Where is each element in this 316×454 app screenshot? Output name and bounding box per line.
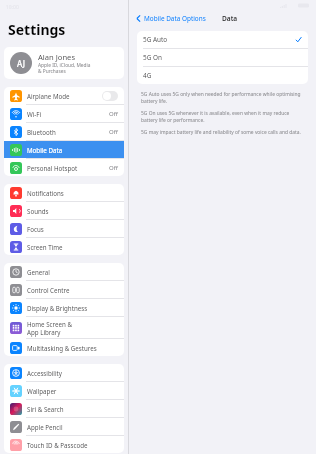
staticText: 5G On uses 5G whenever it is available, … <box>141 110 304 123</box>
button[interactable]: Wi-Fi <box>4 105 124 122</box>
staticText: Apple Pencil <box>27 423 63 431</box>
button[interactable]: 4G <box>137 67 308 84</box>
button[interactable]: Mobile Data <box>4 141 124 158</box>
staticText: 5G Auto uses 5G only when needed for per… <box>141 91 304 104</box>
button[interactable]: Mobile Data Options <box>133 12 208 25</box>
staticText: Home Screen & <box>27 320 72 328</box>
button[interactable]: Accessibility <box>4 364 124 381</box>
staticText: Alan Jones <box>38 52 76 62</box>
button[interactable]: Siri & Search <box>4 400 124 417</box>
staticText: Off <box>109 164 118 172</box>
staticText: 5G may impact battery life and reliabili… <box>141 129 301 136</box>
staticText: 10:00 <box>6 4 19 11</box>
button[interactable]: Home Screen & <box>4 317 124 338</box>
staticText: Display & Brightness <box>27 304 88 312</box>
button[interactable]: Multitasking & Gestures <box>4 339 124 356</box>
staticText: Multitasking & Gestures <box>27 344 97 352</box>
button[interactable]: Sounds <box>4 202 124 219</box>
staticText: Mobile Data Options <box>144 14 206 23</box>
staticText: Wallpaper <box>27 387 57 395</box>
staticText: 5G On <box>143 53 302 62</box>
button[interactable]: Touch ID & Passcode <box>4 436 124 453</box>
other: Selected <box>295 36 302 43</box>
staticText: Data <box>222 14 238 23</box>
staticText: Settings <box>8 20 66 39</box>
staticText: Sounds <box>27 207 49 215</box>
button[interactable]: Bluetooth <box>4 123 124 140</box>
staticText: Accessibility <box>27 369 62 377</box>
button[interactable]: 5G On <box>137 49 308 66</box>
button[interactable]: Display & Brightness <box>4 299 124 316</box>
button[interactable]: 5G Auto <box>137 31 308 48</box>
button[interactable]: AJ <box>4 47 124 79</box>
button[interactable]: Personal Hotspot <box>4 159 124 176</box>
staticText: General <box>27 268 50 276</box>
staticText: Apple ID, iCloud, Media & Purchases <box>38 62 91 74</box>
button[interactable]: General <box>4 263 124 280</box>
staticText: Screen Time <box>27 243 63 251</box>
button[interactable]: Wallpaper <box>4 382 124 399</box>
staticText: Siri & Search <box>27 405 64 413</box>
staticText: Wi-Fi <box>27 110 42 118</box>
staticText: Personal Hotspot <box>27 164 78 172</box>
button[interactable]: Control Centre <box>4 281 124 298</box>
staticText: App Library <box>27 328 61 336</box>
staticText: Off <box>109 128 118 136</box>
button[interactable]: Focus <box>4 220 124 237</box>
button[interactable]: Apple Pencil <box>4 418 124 435</box>
button[interactable]: Airplane Mode toggle <box>102 91 118 101</box>
staticText: Touch ID & Passcode <box>27 441 88 449</box>
staticText: Off <box>109 110 118 118</box>
staticText: Airplane Mode <box>27 92 70 100</box>
button[interactable]: Screen Time <box>4 238 124 255</box>
staticText: Mobile Data <box>27 146 63 154</box>
staticText: Focus <box>27 225 44 233</box>
staticText: AJ <box>17 58 25 69</box>
staticText: 4G <box>143 71 302 80</box>
button[interactable]: Airplane Mode <box>4 87 124 104</box>
staticText: Control Centre <box>27 286 70 294</box>
staticText: 5G Auto <box>143 35 295 44</box>
staticText: Bluetooth <box>27 128 56 136</box>
button[interactable]: Notifications <box>4 184 124 201</box>
staticText: Notifications <box>27 189 64 197</box>
